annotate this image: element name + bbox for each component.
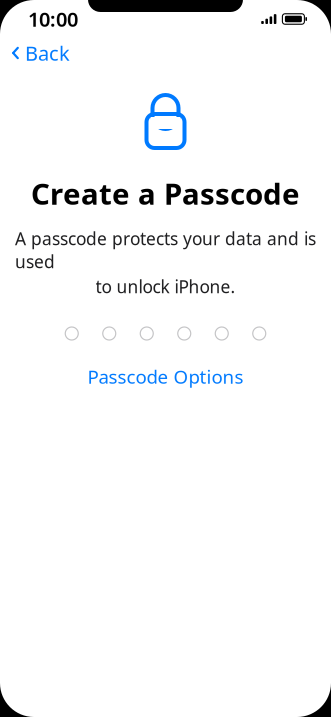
button[interactable]: Passcode Options [77, 358, 253, 395]
button[interactable]: Back [0, 34, 70, 72]
staticText: A passcode protects your data and is use… [15, 227, 316, 273]
staticText: 10:00 [28, 6, 78, 32]
staticText: to unlock iPhone. [95, 275, 235, 298]
staticText: Create a Passcode [31, 174, 300, 213]
staticText: Back [25, 40, 70, 66]
staticText: Passcode Options [87, 364, 243, 389]
